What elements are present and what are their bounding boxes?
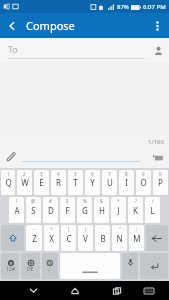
staticText: Z (32, 233, 37, 244)
button[interactable]: ) (78, 225, 93, 251)
button[interactable]: 4 (51, 170, 66, 195)
staticText: N (116, 233, 123, 244)
staticText: . (130, 266, 132, 273)
button[interactable]: 6 (85, 170, 100, 195)
staticText: To (8, 43, 18, 55)
staticText: ? (135, 198, 137, 204)
staticText: R (56, 177, 61, 188)
button[interactable]: Recents (104, 281, 130, 300)
button[interactable]: space (60, 253, 120, 279)
staticText: " (119, 226, 121, 232)
staticText: T (73, 177, 78, 188)
staticText: E (39, 177, 44, 188)
button[interactable]: , (42, 253, 58, 279)
staticText: S (31, 205, 36, 216)
button[interactable]: 5 (68, 170, 83, 195)
button[interactable]: Send (149, 148, 167, 166)
staticText: 9 (142, 171, 145, 177)
staticText: & (100, 198, 104, 204)
staticText: + (50, 226, 53, 232)
staticText: ( (68, 226, 70, 232)
button[interactable]: enter (140, 253, 168, 279)
staticText: Q (5, 177, 12, 188)
button[interactable]: 8 (119, 170, 134, 195)
button[interactable]: $ (60, 197, 75, 223)
button[interactable]: * (111, 197, 126, 223)
staticText: 6:07 PM (143, 3, 166, 11)
button[interactable]: Hide keyboard (20, 281, 46, 300)
staticText: 3 (40, 171, 43, 177)
staticText: , (49, 266, 51, 273)
button[interactable]: : (129, 225, 144, 251)
staticText: ! (16, 198, 18, 204)
button[interactable]: 3 (34, 170, 49, 195)
button[interactable]: . (122, 253, 138, 279)
staticText: ' (102, 226, 104, 232)
staticText: B (100, 233, 106, 244)
staticText: I (125, 177, 128, 188)
staticText: # (49, 198, 52, 204)
button[interactable]: 2 (17, 170, 32, 195)
staticText: 5 (74, 171, 77, 177)
staticText: X (49, 233, 54, 244)
button[interactable]: 0 (153, 170, 168, 195)
staticText: F (65, 205, 70, 216)
staticText: ) (85, 226, 87, 232)
button[interactable]: % (77, 197, 92, 223)
button[interactable]: Switch keyboard (137, 281, 161, 300)
staticText: V (83, 233, 88, 244)
staticText: O (140, 177, 147, 188)
staticText: - (33, 226, 35, 232)
staticText: K (133, 205, 138, 216)
staticText: U (107, 177, 113, 188)
staticText: DE (27, 266, 34, 273)
button[interactable]: Add contact (147, 39, 169, 61)
staticText: 87% (117, 3, 129, 11)
staticText: W (21, 177, 29, 188)
staticText: A (14, 205, 20, 216)
staticText: G (82, 205, 88, 216)
button[interactable]: " (112, 225, 127, 251)
staticText: 2 (23, 171, 26, 177)
staticText: D (48, 205, 54, 216)
button[interactable]: ' (95, 225, 110, 251)
button[interactable]: 7 (102, 170, 117, 195)
staticText: Compose (26, 18, 75, 33)
button[interactable]: Attach (2, 148, 20, 166)
button[interactable]: More options (145, 14, 169, 38)
button[interactable]: @ (26, 197, 41, 223)
button[interactable]: ! (9, 197, 24, 223)
button[interactable]: 1 (1, 170, 15, 195)
button[interactable]: del (146, 225, 168, 251)
staticText: @ (31, 198, 36, 204)
staticText: / (152, 198, 154, 204)
button[interactable]: 12# (1, 253, 19, 279)
staticText: H (99, 205, 105, 216)
staticText: Y (90, 177, 95, 188)
staticText: $ (66, 198, 69, 204)
staticText: 4 (57, 171, 60, 177)
button[interactable]: - (26, 225, 42, 251)
staticText: 0 (159, 171, 162, 177)
button[interactable]: ? (128, 197, 143, 223)
staticText: 12# (6, 266, 15, 273)
button[interactable]: shift (1, 225, 24, 251)
staticText: 1/160 (148, 138, 164, 146)
button[interactable]: 9 (136, 170, 151, 195)
staticText: % (83, 198, 87, 204)
staticText: M (133, 233, 141, 244)
button[interactable]: # (43, 197, 58, 223)
staticText: 7 (108, 171, 111, 177)
button[interactable]: DE (21, 253, 40, 279)
button[interactable]: Back (0, 14, 24, 38)
button[interactable]: Home (62, 281, 88, 300)
button[interactable]: + (44, 225, 59, 251)
button[interactable]: & (94, 197, 109, 223)
button[interactable]: ( (61, 225, 76, 251)
staticText: * (117, 198, 120, 204)
button[interactable]: / (145, 197, 160, 223)
staticText: P (158, 177, 163, 188)
staticText: J (117, 205, 120, 216)
staticText: 8 (125, 171, 128, 177)
staticText: 1 (7, 171, 10, 177)
